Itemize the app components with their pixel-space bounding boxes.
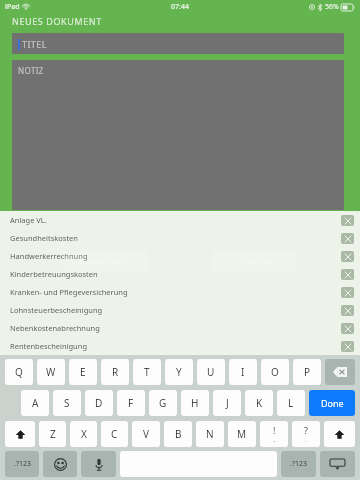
staticText: C: [111, 427, 118, 441]
staticText: Y: [176, 365, 182, 379]
button[interactable]: TITEL: [12, 33, 344, 54]
button[interactable]: Q: [5, 359, 33, 385]
staticText: H: [191, 396, 199, 410]
staticText: .?123: [290, 459, 307, 469]
button[interactable]: Handwerkerrechnung: [0, 247, 360, 265]
button[interactable]: Löschen: [325, 359, 355, 385]
button[interactable]: Eintrag löschen: [341, 269, 354, 280]
staticText: N: [206, 427, 214, 441]
button[interactable]: Nebenkostenabrechnung: [0, 319, 360, 337]
staticText: Kinderbetreuungskosten: [10, 269, 98, 279]
staticText: J: [226, 396, 229, 410]
staticText: Handwerkerrechnung: [10, 251, 88, 261]
staticText: 56%: [325, 2, 339, 12]
button[interactable]: I: [229, 359, 257, 385]
button[interactable]: Umschalten: [324, 421, 355, 447]
button[interactable]: Z: [39, 421, 66, 447]
staticText: Kranken- und Pflegeversicherung: [10, 287, 128, 297]
button[interactable]: B: [164, 421, 192, 447]
button[interactable]: Eintrag löschen: [341, 215, 354, 226]
button[interactable]: P: [293, 359, 321, 385]
button[interactable]: E: [69, 359, 97, 385]
staticText: Gesundheitskosten: [10, 233, 78, 243]
button[interactable]: F: [117, 390, 145, 416]
staticText: X: [81, 427, 87, 441]
staticText: G: [159, 396, 167, 410]
staticText: I: [241, 365, 245, 379]
staticText: 07:44: [171, 2, 189, 12]
staticText: TITEL: [22, 38, 47, 50]
staticText: .: [305, 436, 307, 444]
button[interactable]: Emoji: [43, 451, 77, 477]
button[interactable]: Eintrag löschen: [341, 305, 354, 316]
staticText: A: [32, 396, 39, 410]
staticText: NEUES DOKUMENT: [12, 15, 102, 27]
button[interactable]: T: [133, 359, 161, 385]
button[interactable]: Lohnsteuerbescheinigung: [0, 301, 360, 319]
staticText: L: [288, 396, 294, 410]
staticText: Nebenkostenabrechnung: [10, 323, 100, 333]
staticText: Rentenbescheinigung: [10, 341, 88, 351]
staticText: M: [237, 427, 247, 441]
button[interactable]: J: [213, 390, 241, 416]
button[interactable]: G: [149, 390, 177, 416]
button[interactable]: Diktieren: [81, 451, 116, 477]
button[interactable]: Eintrag löschen: [341, 341, 354, 352]
button[interactable]: K: [245, 390, 273, 416]
button[interactable]: V: [132, 421, 160, 447]
staticText: E: [80, 365, 86, 379]
button[interactable]: Eintrag löschen: [341, 233, 354, 244]
button[interactable]: A: [21, 390, 49, 416]
button[interactable]: D: [85, 390, 113, 416]
staticText: W: [46, 365, 56, 379]
staticText: Done: [321, 397, 344, 409]
staticText: Lohnsteuerbescheinigung: [10, 305, 103, 315]
button[interactable]: Eintrag löschen: [341, 287, 354, 298]
button[interactable]: ABBRECHEN: [63, 251, 148, 273]
staticText: .?123: [14, 459, 31, 469]
staticText: ,: [274, 436, 276, 444]
button[interactable]: Anlage VL.: [0, 211, 360, 229]
button[interactable]: Y: [165, 359, 193, 385]
button[interactable]: Tastatur ausblenden: [320, 451, 355, 477]
button[interactable]: ?: [292, 421, 320, 447]
button[interactable]: C: [101, 421, 128, 447]
button[interactable]: M: [228, 421, 256, 447]
button[interactable]: Rentenbescheinigung: [0, 337, 360, 355]
button[interactable]: U: [197, 359, 225, 385]
staticText: S: [64, 396, 70, 410]
button[interactable]: Gesundheitskosten: [0, 229, 360, 247]
button[interactable]: Eintrag löschen: [341, 251, 354, 262]
button[interactable]: R: [101, 359, 129, 385]
button[interactable]: Kinderbetreuungskosten: [0, 265, 360, 283]
button[interactable]: N: [196, 421, 224, 447]
button[interactable]: W: [37, 359, 65, 385]
button[interactable]: X: [70, 421, 97, 447]
staticText: B: [175, 427, 182, 441]
staticText: U: [207, 365, 215, 379]
button[interactable]: H: [181, 390, 209, 416]
staticText: T: [144, 365, 150, 379]
staticText: !: [273, 424, 276, 436]
staticText: Q: [15, 365, 23, 379]
button[interactable]: Eintrag löschen: [341, 323, 354, 334]
button[interactable]: !: [260, 421, 288, 447]
staticText: V: [143, 427, 149, 441]
staticText: O: [271, 365, 279, 379]
button[interactable]: .?123: [5, 451, 39, 477]
button[interactable]: O: [261, 359, 289, 385]
button[interactable]: .?123: [281, 451, 316, 477]
button[interactable]: L: [277, 390, 305, 416]
button[interactable]: Done: [309, 390, 355, 416]
staticText: K: [256, 396, 263, 410]
button[interactable]: Kranken- und Pflegeversicherung: [0, 283, 360, 301]
staticText: F: [128, 396, 134, 410]
staticText: NOTIZ: [18, 65, 44, 76]
button[interactable]: Umschalten: [5, 421, 35, 447]
staticText: R: [112, 365, 119, 379]
button[interactable]: S: [53, 390, 81, 416]
